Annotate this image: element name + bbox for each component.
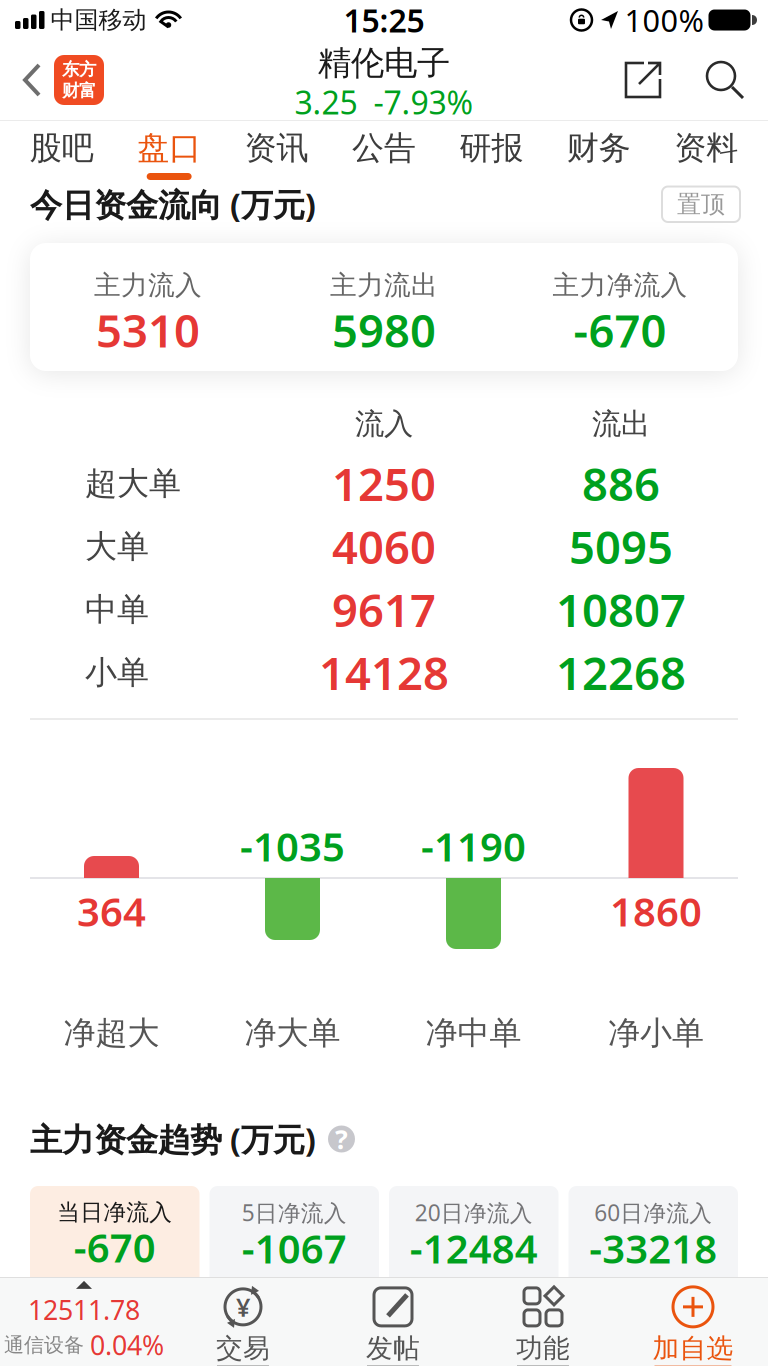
button[interactable]: 交易 — [168, 1276, 318, 1366]
button[interactable]: 5日净流入 — [209, 1186, 379, 1296]
staticText: 发帖 — [366, 1332, 420, 1365]
staticText: 1250 — [332, 453, 436, 514]
staticText: 资料 — [674, 128, 738, 168]
staticText: -1067 — [242, 1221, 347, 1275]
staticText: 主力流入 — [94, 269, 202, 302]
staticText: 12268 — [556, 642, 686, 703]
staticText: 净小单 — [608, 1013, 704, 1053]
staticText: 364 — [77, 884, 146, 937]
staticText: 0.04% — [90, 1327, 164, 1363]
staticText: 交易 — [216, 1332, 270, 1365]
staticText: 精伦电子 — [318, 43, 450, 84]
staticText: -670 — [573, 300, 666, 360]
button[interactable]: 发帖 — [318, 1276, 468, 1366]
staticText: 小单 — [85, 653, 149, 692]
staticText: -7.93% — [373, 81, 473, 123]
button[interactable]: 功能 — [468, 1276, 618, 1366]
button[interactable]: 置顶 — [662, 186, 740, 222]
button[interactable]: 60日净流入 — [568, 1186, 738, 1296]
staticText: 5310 — [96, 300, 200, 360]
staticText: 20日净流入 — [415, 1197, 533, 1227]
staticText: 主力净流入 — [552, 269, 687, 302]
button[interactable]: 分享 — [623, 60, 663, 100]
staticText: 主力资金趋势 (万元) — [30, 1118, 316, 1160]
button[interactable]: 20日净流入 — [389, 1186, 558, 1296]
staticText: 当日净流入 — [57, 1198, 172, 1226]
staticText: 超大单 — [85, 464, 181, 503]
button[interactable]: 财务 — [545, 121, 652, 183]
button[interactable]: 资讯 — [223, 121, 330, 183]
staticText: 3.25 — [294, 81, 357, 123]
staticText: 流入 — [355, 406, 413, 442]
staticText: 5日净流入 — [242, 1197, 347, 1227]
staticText: 100% — [624, 0, 703, 40]
staticText: 资讯 — [245, 128, 309, 168]
staticText: 中国移动 — [50, 5, 146, 35]
button[interactable]: 盘口 — [115, 121, 223, 183]
staticText: -12484 — [410, 1221, 538, 1275]
button[interactable]: 股吧 — [8, 121, 115, 183]
staticText: 1860 — [610, 884, 702, 937]
staticText: 财务 — [567, 128, 631, 168]
staticText: 今日资金流向 (万元) — [30, 183, 316, 225]
button[interactable]: 当日净流入 — [30, 1186, 199, 1296]
button[interactable]: 公告 — [330, 121, 438, 183]
staticText: 净中单 — [425, 1013, 521, 1053]
button[interactable]: 研报 — [438, 121, 545, 183]
button[interactable]: 通信设备板块 — [0, 1276, 168, 1363]
staticText: 中单 — [85, 590, 149, 629]
staticText: 净大单 — [244, 1013, 340, 1053]
button[interactable]: 资料 — [653, 121, 760, 183]
staticText: 研报 — [459, 128, 523, 168]
staticText: 东方 — [62, 59, 96, 80]
staticText: 通信设备 — [4, 1333, 84, 1357]
staticText: 12511.78 — [28, 1292, 140, 1327]
staticText: -33218 — [589, 1221, 717, 1275]
staticText: -1035 — [240, 819, 345, 872]
staticText: -1190 — [421, 819, 526, 872]
staticText: 大单 — [85, 527, 149, 566]
staticText: ¥ — [236, 1290, 250, 1324]
button[interactable]: 搜索 — [663, 60, 768, 100]
staticText: 9617 — [332, 579, 436, 640]
staticText: 功能 — [516, 1332, 570, 1365]
staticText: 流出 — [592, 406, 650, 442]
staticText: 10807 — [556, 579, 686, 640]
staticText: 14128 — [319, 642, 449, 703]
staticText: 60日净流入 — [594, 1197, 712, 1227]
button[interactable]: 帮助 — [328, 1121, 355, 1157]
button[interactable]: 加自选 — [618, 1276, 768, 1366]
staticText: 15:25 — [343, 0, 424, 41]
staticText: 置顶 — [677, 189, 725, 219]
staticText: 公告 — [352, 128, 416, 168]
staticText: 财富 — [62, 80, 96, 101]
staticText: 4060 — [332, 516, 436, 577]
staticText: 加自选 — [652, 1332, 733, 1365]
button[interactable]: 返回 — [0, 63, 42, 97]
staticText: ? — [335, 1121, 348, 1157]
staticText: -670 — [74, 1220, 156, 1273]
staticText: 5980 — [332, 300, 436, 360]
staticText: 886 — [582, 453, 660, 514]
staticText: 5095 — [569, 516, 673, 577]
staticText: 盘口 — [137, 128, 201, 168]
staticText: 净超大 — [63, 1013, 159, 1053]
staticText: 主力流出 — [330, 269, 438, 302]
staticText: 股吧 — [30, 128, 94, 168]
